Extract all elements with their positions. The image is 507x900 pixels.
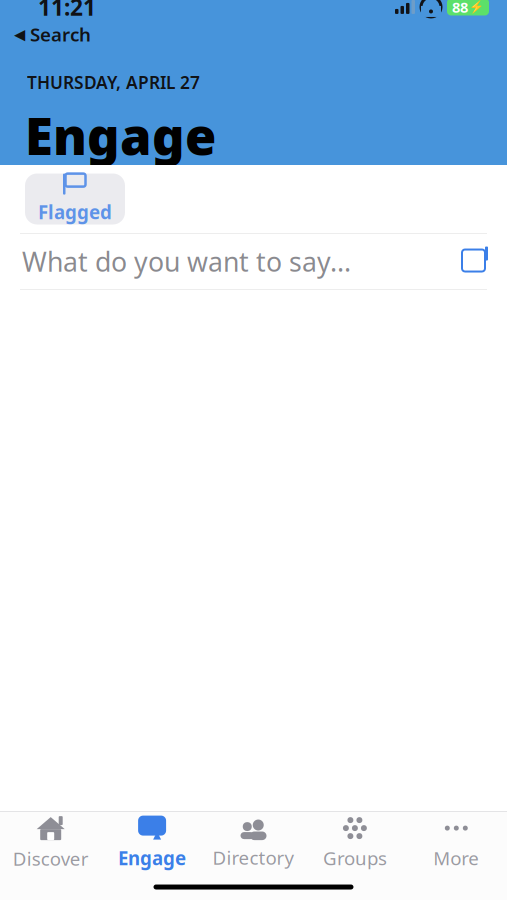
staticText: 11:21	[38, 0, 96, 22]
staticText: Search	[30, 22, 91, 47]
button[interactable]: Directory	[203, 814, 304, 872]
button[interactable]: More	[406, 814, 507, 872]
button[interactable]: Engage	[101, 814, 203, 872]
staticText: ⚡	[469, 0, 484, 14]
staticText: Engage	[25, 102, 216, 169]
staticText: What do you want to say...	[22, 244, 351, 279]
button[interactable]: Discover	[0, 814, 101, 872]
button[interactable]: Flagged	[25, 173, 125, 224]
button[interactable]: Groups	[304, 814, 406, 872]
staticText: Directory	[212, 845, 294, 870]
staticText: Groups	[323, 846, 387, 870]
button[interactable]: ◀	[0, 20, 91, 49]
staticText: Flagged	[38, 200, 112, 224]
staticText: Engage	[118, 846, 186, 870]
staticText: More	[433, 846, 479, 870]
staticText: THURSDAY, APRIL 27	[27, 71, 200, 94]
staticText: ◀	[14, 26, 25, 43]
staticText: Discover	[13, 846, 89, 871]
staticText: 88	[452, 0, 468, 17]
button[interactable]: What do you want to say...	[0, 234, 507, 289]
